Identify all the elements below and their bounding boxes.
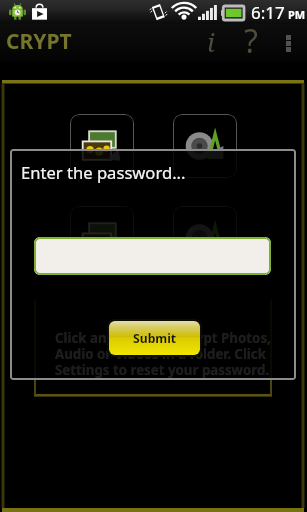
- staticText: PM: [288, 7, 306, 22]
- staticText: ?: [244, 19, 258, 57]
- button[interactable]: Photos: [70, 114, 134, 178]
- staticText: 6:17: [251, 1, 285, 24]
- button[interactable]: Audio: [173, 206, 237, 270]
- button[interactable]: Help: [233, 19, 269, 57]
- button[interactable]: Submit: [109, 321, 200, 355]
- staticText: Click any icon to encrypt Photos, Audio …: [55, 329, 271, 379]
- staticText: CRYPT: [6, 27, 72, 56]
- button[interactable]: Password field: [34, 237, 271, 275]
- button[interactable]: Photos: [70, 206, 134, 270]
- button[interactable]: Info: [193, 22, 229, 60]
- staticText: i: [207, 24, 215, 59]
- button[interactable]: More options: [272, 24, 304, 62]
- staticText: Submit: [133, 330, 177, 347]
- button[interactable]: Audio: [173, 114, 237, 178]
- staticText: Enter the password...: [21, 161, 186, 184]
